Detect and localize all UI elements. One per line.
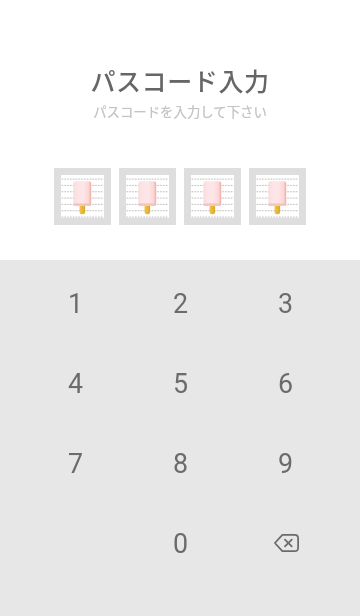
staticText: 7 xyxy=(68,448,84,479)
staticText: 2 xyxy=(173,288,189,319)
button[interactable]: 0 xyxy=(128,503,233,583)
button[interactable]: 8 xyxy=(128,423,233,503)
button[interactable]: Delete xyxy=(233,503,338,583)
button[interactable]: 4 xyxy=(23,343,128,423)
button[interactable]: 6 xyxy=(233,343,338,423)
button[interactable]: 7 xyxy=(23,423,128,503)
staticText: 5 xyxy=(173,368,189,399)
staticText: パスコード入力 xyxy=(90,62,270,98)
button[interactable]: 2 xyxy=(128,263,233,343)
staticText: 9 xyxy=(278,448,294,479)
staticText: 1 xyxy=(68,288,84,319)
staticText: 6 xyxy=(278,368,294,399)
staticText: 0 xyxy=(173,528,189,559)
staticText: 3 xyxy=(278,288,294,319)
staticText: 8 xyxy=(173,448,189,479)
button[interactable]: 5 xyxy=(128,343,233,423)
button[interactable]: 9 xyxy=(233,423,338,503)
staticText: 4 xyxy=(68,368,84,399)
staticText: パスコードを入力して下さい xyxy=(93,101,267,120)
button[interactable]: 1 xyxy=(23,263,128,343)
button[interactable]: 3 xyxy=(233,263,338,343)
